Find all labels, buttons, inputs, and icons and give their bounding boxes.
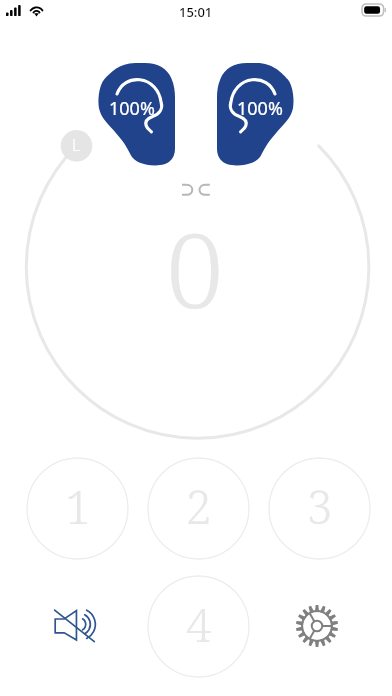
button[interactable]: Left earbud battery 100 percent: [98, 63, 175, 167]
button[interactable]: 2: [147, 457, 250, 560]
staticText: 100%: [109, 96, 155, 121]
staticText: L: [72, 134, 81, 156]
button[interactable]: Left volume: [60, 129, 92, 161]
staticText: 0: [166, 198, 224, 338]
staticText: 1: [65, 475, 91, 538]
staticText: 100%: [237, 96, 283, 121]
staticText: 2: [186, 475, 212, 538]
staticText: 15:01: [179, 3, 213, 21]
button[interactable]: 4: [147, 575, 250, 678]
button[interactable]: 3: [268, 457, 371, 560]
button[interactable]: Mute: [48, 597, 104, 653]
button[interactable]: 1: [26, 457, 129, 560]
button[interactable]: Settings: [289, 598, 345, 654]
button[interactable]: Right earbud battery 100 percent: [217, 63, 294, 167]
staticText: 3: [307, 475, 333, 538]
staticText: 4: [186, 593, 212, 656]
